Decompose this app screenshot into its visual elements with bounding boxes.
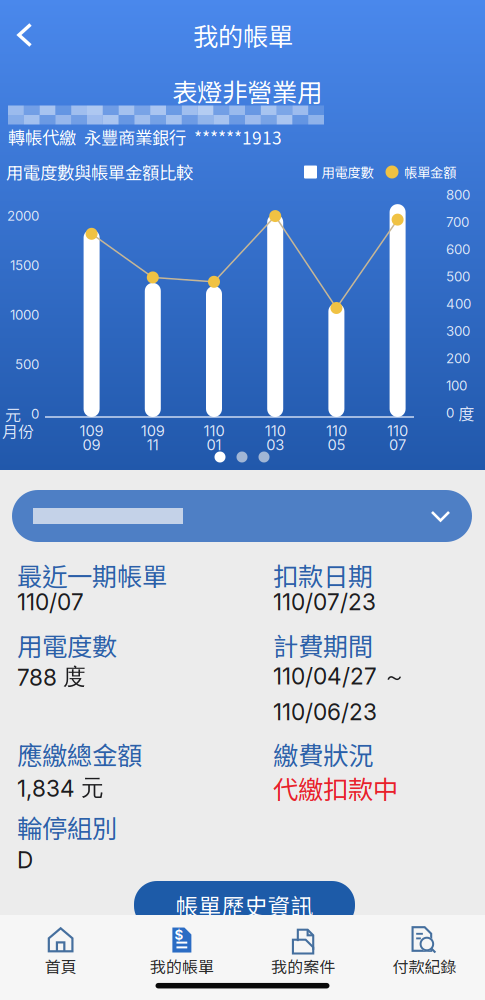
staticText: 度 xyxy=(458,401,474,425)
button[interactable]: 返回 xyxy=(3,9,46,60)
staticText: 0 xyxy=(446,405,454,421)
staticText: 600 xyxy=(446,241,470,257)
staticText: 110 xyxy=(265,422,286,440)
staticText: 計費期間 xyxy=(273,627,373,663)
button[interactable]: $ xyxy=(121,915,242,1000)
staticText: 500 xyxy=(446,269,470,285)
staticText: D xyxy=(17,846,33,874)
staticText: 元 xyxy=(5,402,21,426)
staticText: 1,834 元 xyxy=(17,774,104,802)
staticText: 用電度數 xyxy=(321,162,373,182)
staticText: 應繳總金額 xyxy=(17,736,142,772)
staticText: 110 xyxy=(387,422,408,440)
staticText: 帳單歷史資訊 xyxy=(175,889,313,921)
staticText: $ xyxy=(174,927,183,943)
staticText: 表燈非營業用 xyxy=(172,73,322,109)
staticText: 2000 xyxy=(7,208,39,224)
staticText: 01 xyxy=(206,436,221,454)
staticText: 用電度數與帳單金額比較 xyxy=(6,159,193,185)
staticText: 110/07 xyxy=(17,588,84,616)
staticText: 500 xyxy=(15,356,39,372)
staticText: 我的帳單 xyxy=(193,17,293,53)
staticText: 我的帳單 xyxy=(150,954,214,978)
staticText: 扣款日期 xyxy=(273,557,373,593)
staticText: 首頁 xyxy=(45,954,77,978)
staticText: 代繳扣款中 xyxy=(273,770,398,806)
button[interactable]: 付款紀錄 xyxy=(364,915,485,1000)
staticText: 300 xyxy=(446,323,470,339)
staticText: 11 xyxy=(147,436,159,454)
staticText: 05 xyxy=(327,436,345,454)
staticText: 月份 xyxy=(2,419,34,443)
staticText: 帳單金額 xyxy=(404,162,456,182)
staticText: 繳費狀況 xyxy=(273,736,373,772)
staticText: 轉帳代繳 永豐商業銀行 ******1913 xyxy=(8,124,282,150)
staticText: 788 度 xyxy=(17,663,86,691)
staticText: 1500 xyxy=(10,257,39,273)
staticText: 110 xyxy=(326,422,347,440)
staticText: 109 xyxy=(80,422,104,440)
staticText: 109 xyxy=(141,422,165,440)
staticText: 200 xyxy=(446,350,470,366)
staticText: 110/07/23 xyxy=(273,588,376,616)
staticText: 我的案件 xyxy=(271,954,335,978)
button[interactable]: 首頁 xyxy=(0,915,121,1000)
staticText: 0 xyxy=(31,406,39,422)
staticText: 110/04/27 ～ xyxy=(273,663,406,691)
staticText: 07 xyxy=(389,436,406,454)
button[interactable] xyxy=(12,490,472,542)
staticText: 用電度數 xyxy=(17,627,117,663)
button[interactable]: 我的案件 xyxy=(242,915,364,1000)
staticText: 付款紀錄 xyxy=(392,954,456,978)
button[interactable]: 帳單歷史資訊 xyxy=(134,881,355,929)
staticText: 110/06/23 xyxy=(273,698,377,726)
staticText: 110 xyxy=(203,422,224,440)
staticText: 03 xyxy=(266,436,284,454)
staticText: 800 xyxy=(446,187,470,203)
staticText: 最近一期帳單 xyxy=(17,557,167,593)
staticText: 09 xyxy=(83,436,101,454)
staticText: 400 xyxy=(446,296,471,312)
staticText: 100 xyxy=(446,378,467,394)
staticText: 700 xyxy=(446,214,469,230)
staticText: 輪停組別 xyxy=(17,809,117,845)
staticText: 1000 xyxy=(10,307,39,323)
